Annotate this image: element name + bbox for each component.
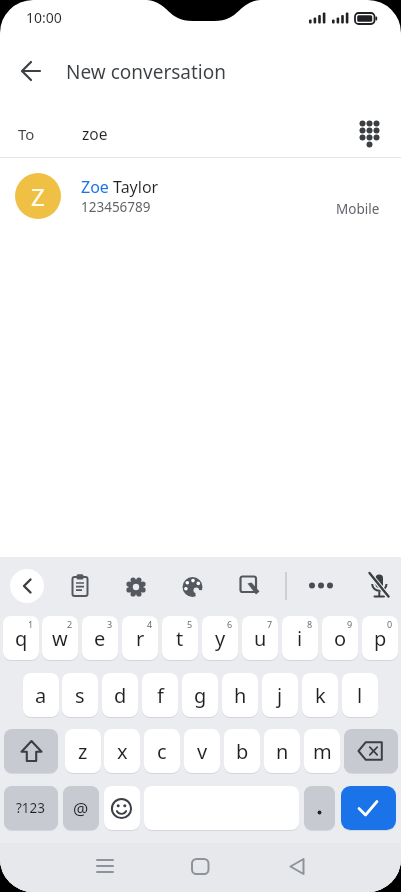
staticText: q — [15, 625, 28, 652]
button[interactable]: w — [42, 616, 78, 660]
staticText: Mobile — [336, 200, 380, 218]
button[interactable]: i — [282, 616, 318, 660]
button[interactable]: d — [102, 673, 138, 717]
button[interactable]: b — [224, 729, 260, 773]
button[interactable]: r — [122, 616, 158, 660]
staticText: 3 — [107, 618, 113, 630]
button[interactable] — [271, 843, 319, 891]
button[interactable]: @ — [63, 786, 99, 830]
staticText: s — [75, 682, 85, 709]
staticText: o — [334, 625, 347, 652]
button[interactable]: p — [362, 616, 398, 660]
button[interactable]: y — [202, 616, 238, 660]
staticText: Zoe Taylor — [81, 176, 159, 198]
staticText: z — [78, 738, 88, 765]
staticText: 5 — [187, 618, 193, 630]
button[interactable] — [10, 569, 44, 603]
staticText: b — [236, 738, 249, 765]
staticText: r — [136, 625, 145, 652]
button[interactable]: c — [144, 729, 180, 773]
staticText: j — [277, 682, 283, 709]
button[interactable] — [7, 47, 55, 95]
staticText: New conversation — [66, 59, 226, 85]
button[interactable]: e — [82, 616, 118, 660]
button[interactable]: x — [104, 729, 140, 773]
button[interactable]: q — [3, 616, 39, 660]
button[interactable]: k — [302, 673, 338, 717]
button[interactable]: u — [242, 616, 278, 660]
staticText: 7 — [267, 618, 273, 630]
staticText: v — [197, 738, 208, 765]
staticText: e — [94, 625, 106, 652]
staticText: u — [254, 625, 267, 652]
staticText: w — [52, 625, 68, 652]
staticText: x — [117, 738, 128, 765]
staticText: 123456789 — [81, 198, 151, 216]
staticText: k — [315, 682, 326, 709]
button[interactable]: m — [304, 729, 340, 773]
staticText: a — [35, 682, 47, 709]
staticText: h — [234, 682, 247, 709]
button[interactable]: j — [262, 673, 298, 717]
button[interactable]: g — [182, 673, 218, 717]
staticText: 4 — [147, 618, 153, 630]
button[interactable] — [344, 729, 398, 773]
staticText: y — [215, 625, 226, 652]
button[interactable]: a — [23, 673, 59, 717]
staticText: To — [18, 124, 35, 144]
button[interactable]: f — [142, 673, 178, 717]
staticText: t — [176, 625, 184, 652]
staticText: m — [313, 738, 332, 765]
staticText: @ — [73, 797, 89, 820]
staticText: 6 — [227, 618, 233, 630]
staticText: 0 — [387, 618, 393, 630]
button[interactable] — [4, 729, 58, 773]
button[interactable]: l — [342, 673, 378, 717]
staticText: n — [276, 738, 289, 765]
staticText: 8 — [307, 618, 313, 630]
staticText: i — [297, 625, 303, 652]
staticText: 9 — [347, 618, 353, 630]
button[interactable]: z — [65, 729, 101, 773]
staticText: f — [157, 682, 164, 709]
staticText: d — [114, 682, 127, 709]
button[interactable]: t — [162, 616, 198, 660]
staticText: 2 — [67, 618, 73, 630]
button[interactable] — [81, 843, 129, 891]
button[interactable] — [104, 786, 140, 830]
staticText: l — [357, 682, 363, 709]
button[interactable]: h — [222, 673, 258, 717]
staticText: 1 — [28, 618, 34, 630]
button[interactable]: n — [264, 729, 300, 773]
button[interactable] — [341, 786, 396, 830]
staticText: g — [194, 682, 207, 709]
staticText: Z — [31, 180, 45, 213]
button[interactable]: v — [184, 729, 220, 773]
staticText: c — [157, 738, 167, 765]
staticText: 10:00 — [26, 8, 62, 27]
staticText: ?123 — [16, 799, 46, 817]
button[interactable]: ?123 — [4, 786, 58, 830]
button[interactable] — [304, 786, 335, 830]
button[interactable]: s — [62, 673, 98, 717]
button[interactable]: o — [322, 616, 358, 660]
staticText: zoe — [82, 123, 108, 144]
staticText: p — [374, 625, 387, 652]
button[interactable] — [346, 110, 392, 156]
button[interactable] — [176, 843, 224, 891]
button[interactable]: Z — [0, 162, 401, 230]
